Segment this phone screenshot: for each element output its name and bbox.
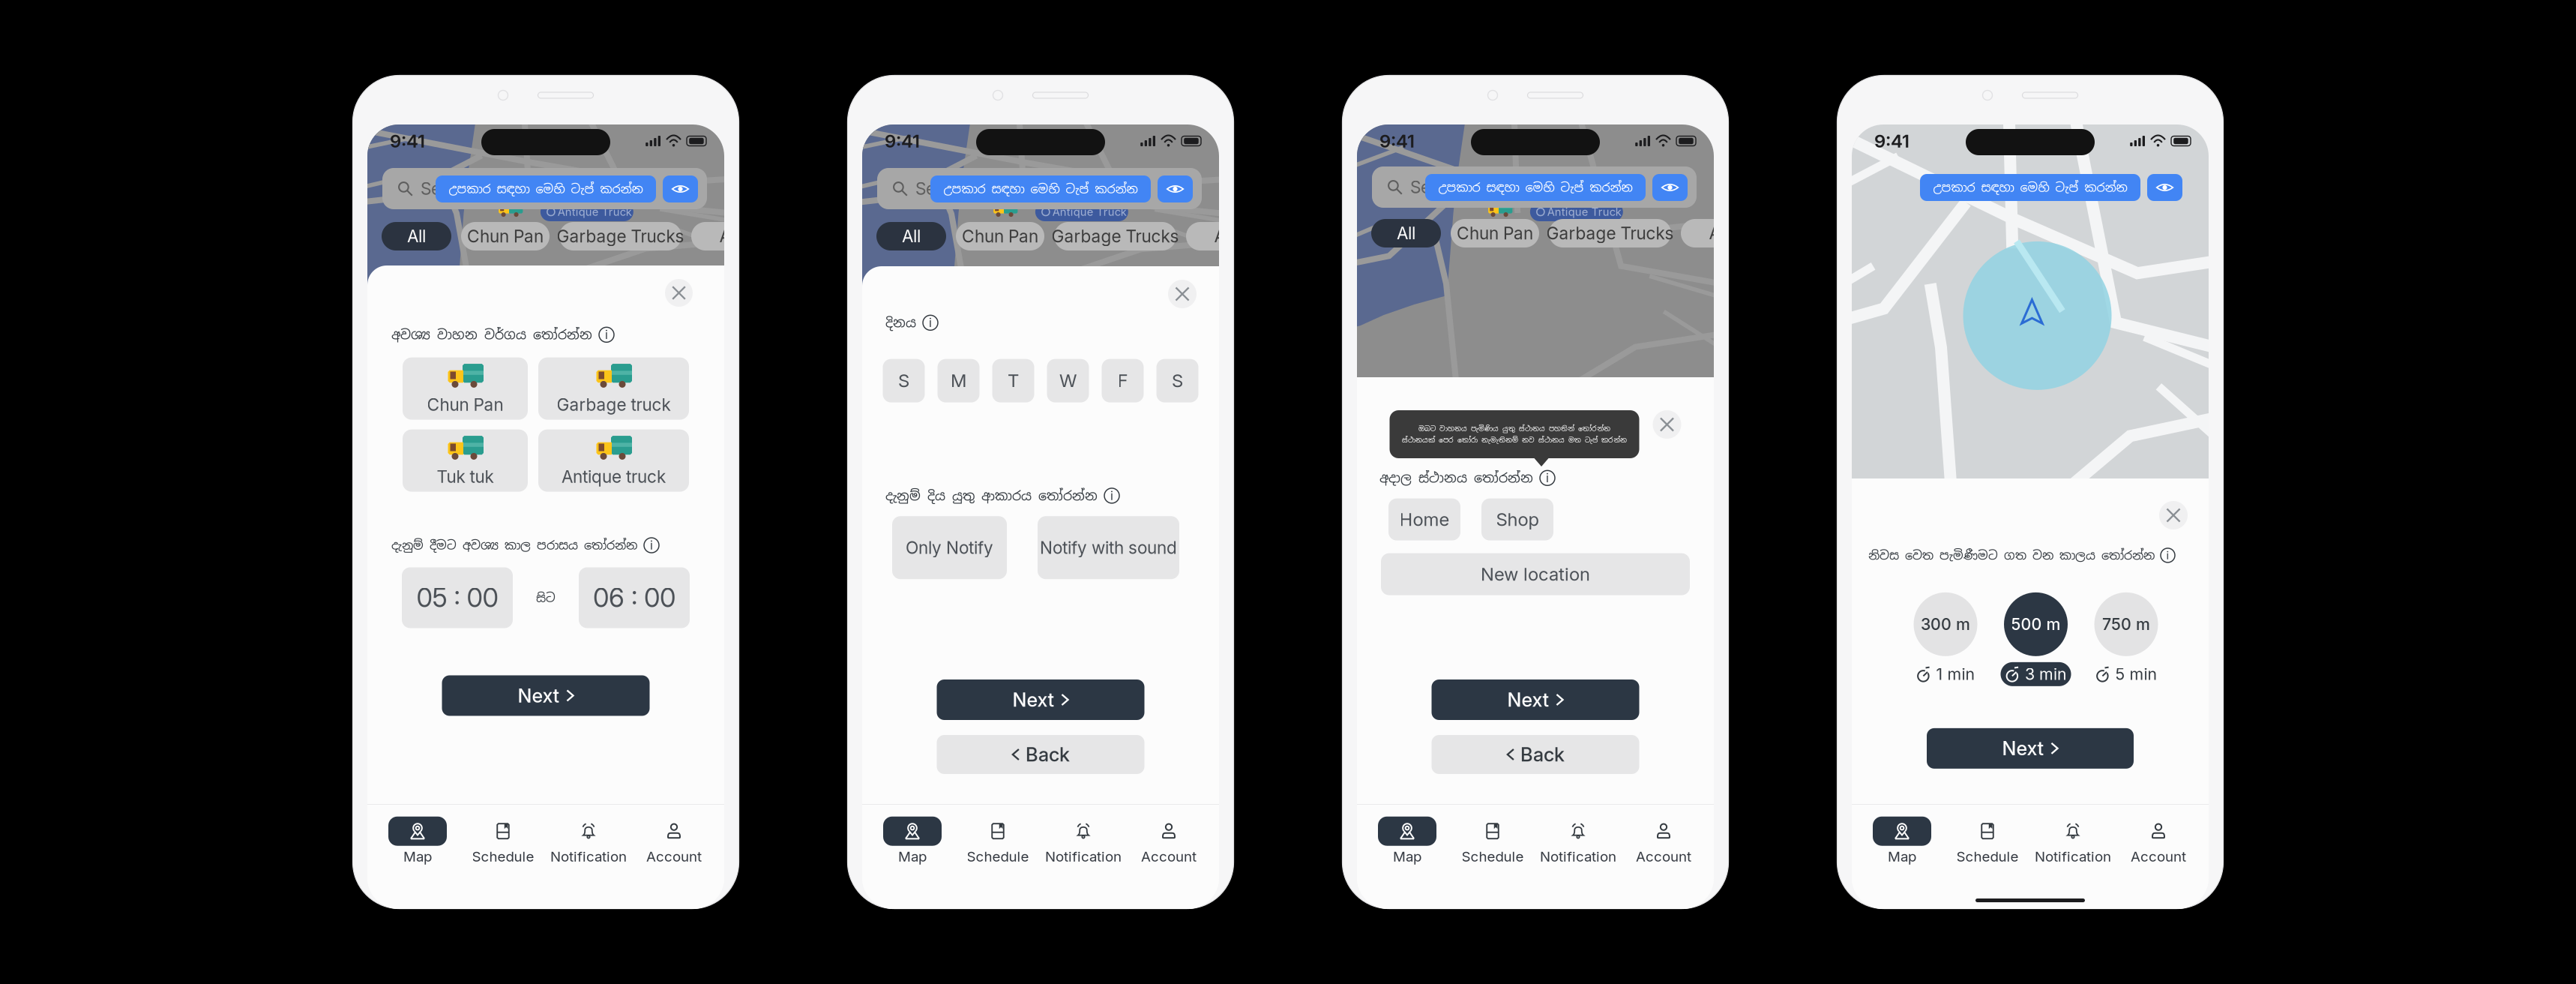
button[interactable]: All [1371, 219, 1441, 247]
button[interactable]: Garbage Trucks [1054, 222, 1176, 250]
staticText: Chun Pan [427, 394, 503, 415]
button[interactable]: උපකාර සඳහා මෙහි ටැප් කරන්න [1920, 174, 2140, 201]
button[interactable]: උපකාර සඳහා මෙහි ටැප් කරන්න [930, 175, 1151, 202]
button[interactable]: Account [1126, 816, 1212, 865]
staticText: Back [1520, 743, 1565, 766]
button[interactable]: Next [937, 679, 1144, 720]
button[interactable]: Toggle visibility [2147, 174, 2182, 201]
button[interactable]: Garbage Trucks [559, 222, 681, 250]
button[interactable]: Map [1859, 816, 1945, 865]
staticText: ස්ථානයක් පෙර තෝරා නැමැතිනම් නව ස්ථානය මත… [1402, 435, 1627, 445]
button[interactable]: Notification [1535, 816, 1621, 865]
staticText: Map [1393, 848, 1421, 865]
button[interactable]: Garbage Trucks [1549, 219, 1671, 247]
button[interactable]: Next [1927, 728, 2134, 769]
staticText: උපකාර සඳහා මෙහි ටැප් කරන්න [1933, 180, 2127, 195]
staticText: All [902, 226, 921, 247]
staticText: 750 m [2102, 615, 2150, 634]
staticText: i [929, 315, 932, 330]
button[interactable]: All [876, 222, 946, 250]
button[interactable]: New location [1381, 553, 1690, 595]
button[interactable]: උපකාර සඳහා මෙහි ටැප් කරන්න [436, 175, 656, 202]
button[interactable]: Account [1621, 816, 1706, 865]
staticText: F [1117, 370, 1128, 392]
staticText: උපකාර සඳහා මෙහි ටැප් කරන්න [1438, 180, 1632, 195]
button[interactable]: Chun Pan [1451, 219, 1539, 247]
button[interactable]: All [382, 222, 451, 250]
button[interactable]: Close [2159, 501, 2188, 529]
button[interactable]: A [1681, 219, 1748, 247]
button[interactable]: 05 : 00 [402, 567, 513, 628]
button[interactable]: A [1186, 222, 1254, 250]
button[interactable]: F [1102, 359, 1144, 402]
staticText: 9:41 [885, 130, 920, 152]
staticText: i [605, 327, 608, 342]
staticText: 5 min [2115, 664, 2157, 684]
button[interactable]: 500 m [2001, 592, 2071, 686]
button[interactable]: Chun Pan [461, 222, 550, 250]
button[interactable]: Shop [1481, 498, 1553, 540]
staticText: නිවස වෙත පැමිණීමට ගත වන කාලය තෝරන්න [1868, 547, 2155, 563]
button[interactable]: Schedule [460, 816, 546, 865]
staticText: Next [1507, 688, 1549, 711]
staticText: Account [1636, 848, 1691, 865]
staticText: Antique truck [562, 466, 666, 487]
button[interactable]: Account [631, 816, 717, 865]
staticText: Chun Pan [467, 226, 544, 247]
staticText: 3 min [2025, 664, 2067, 684]
button[interactable]: Close [1168, 280, 1197, 308]
staticText: All [407, 226, 426, 247]
button[interactable]: Garbage truck [538, 357, 689, 420]
staticText: Only Notify [906, 537, 993, 558]
button[interactable]: W [1047, 359, 1089, 402]
button[interactable]: 750 m [2094, 592, 2158, 686]
staticText: Antique Truck [558, 205, 632, 218]
button[interactable]: උපකාර සඳහා මෙහි ටැප් කරන්න [1425, 174, 1646, 201]
button[interactable]: Map [1364, 816, 1450, 865]
button[interactable]: Back [1432, 735, 1639, 774]
button[interactable]: Close [1653, 410, 1681, 439]
button[interactable]: Home [1388, 498, 1460, 540]
staticText: Account [1141, 848, 1197, 865]
staticText: Shop [1496, 509, 1539, 530]
button[interactable]: Next [442, 675, 650, 716]
staticText: දැනුම් දිය යුතු ආකාරය තෝරන්න [885, 487, 1098, 504]
staticText: 9:41 [1379, 130, 1415, 152]
staticText: Next [518, 684, 560, 707]
button[interactable]: Notification [1041, 816, 1126, 865]
button[interactable]: S [1156, 359, 1198, 402]
button[interactable]: Map [870, 816, 955, 865]
button[interactable]: Map [375, 816, 460, 865]
button[interactable]: Only Notify [892, 516, 1007, 579]
button[interactable]: Notification [546, 816, 631, 865]
button[interactable]: A [691, 222, 759, 250]
button[interactable]: 06 : 00 [579, 567, 690, 628]
button[interactable]: Schedule [955, 816, 1041, 865]
staticText: Next [1013, 688, 1055, 711]
button[interactable]: Account [2116, 816, 2201, 865]
staticText: 05 : 00 [416, 582, 498, 613]
button[interactable]: S [883, 359, 925, 402]
button[interactable]: Antique truck [538, 429, 689, 492]
button[interactable]: Chun Pan [956, 222, 1044, 250]
staticText: 9:41 [390, 130, 425, 152]
button[interactable]: Next [1432, 679, 1639, 720]
button[interactable]: T [992, 359, 1034, 402]
button[interactable]: Toggle visibility [1652, 174, 1688, 201]
button[interactable]: Schedule [1945, 816, 2030, 865]
button[interactable]: Toggle visibility [663, 175, 698, 202]
staticText: අදාල ස්ථානය තෝරන්න [1379, 469, 1533, 486]
button[interactable]: Close [665, 279, 693, 307]
button[interactable]: Tuk tuk [403, 429, 528, 492]
button[interactable]: Schedule [1450, 816, 1535, 865]
button[interactable]: Back [937, 735, 1144, 774]
button[interactable]: Chun Pan [403, 357, 528, 420]
button[interactable]: Notification [2030, 816, 2116, 865]
button[interactable]: 300 m [1914, 592, 1977, 686]
button[interactable]: Toggle visibility [1158, 175, 1193, 202]
button[interactable]: M [938, 359, 979, 402]
staticText: A [719, 226, 731, 247]
staticText: Se [1410, 177, 1430, 197]
button[interactable]: Notify with sound [1038, 516, 1179, 579]
staticText: 500 m [2011, 615, 2061, 634]
